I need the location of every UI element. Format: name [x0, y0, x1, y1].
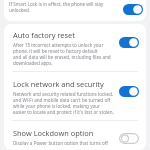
staticText: After 15 incorrect attempts to unlock yo…: [13, 42, 104, 48]
button[interactable]: Auto factory reset: [118, 34, 140, 50]
staticText: while your phone is locked, making your …: [13, 103, 115, 109]
staticText: If Smart Lock is in effect, the phone wi…: [9, 1, 104, 7]
staticText: Lock network and security: [13, 79, 104, 89]
staticText: Show Lockdown option: [13, 128, 94, 138]
button[interactable]: Lock network and security: [118, 83, 140, 99]
button[interactable]: Auto factory reset: [4, 24, 146, 71]
button[interactable]: Lock network and security: [4, 72, 146, 120]
button[interactable]: Show Lockdown option: [4, 121, 146, 150]
staticText: Network and security related functions l…: [13, 91, 114, 97]
staticText: Auto factory reset: [13, 30, 75, 40]
staticText: and all data will be erased, including f…: [13, 54, 111, 60]
button[interactable]: Show Lockdown option: [118, 132, 140, 145]
button[interactable]: Smart Lock toggle: [122, 1, 144, 17]
staticText: downloaded apps.: [13, 60, 53, 66]
staticText: Display a Power button option that turns…: [13, 140, 108, 145]
staticText: phone, it will be reset to factory defau…: [13, 48, 115, 54]
staticText: easier to locate and protect if it's los…: [13, 109, 114, 115]
staticText: unlocked.: [9, 7, 30, 13]
button[interactable]: If Smart Lock is in effect, the phone wi…: [4, 0, 146, 21]
staticText: and Wi-Fi and mobile data can't be turne…: [13, 97, 111, 103]
